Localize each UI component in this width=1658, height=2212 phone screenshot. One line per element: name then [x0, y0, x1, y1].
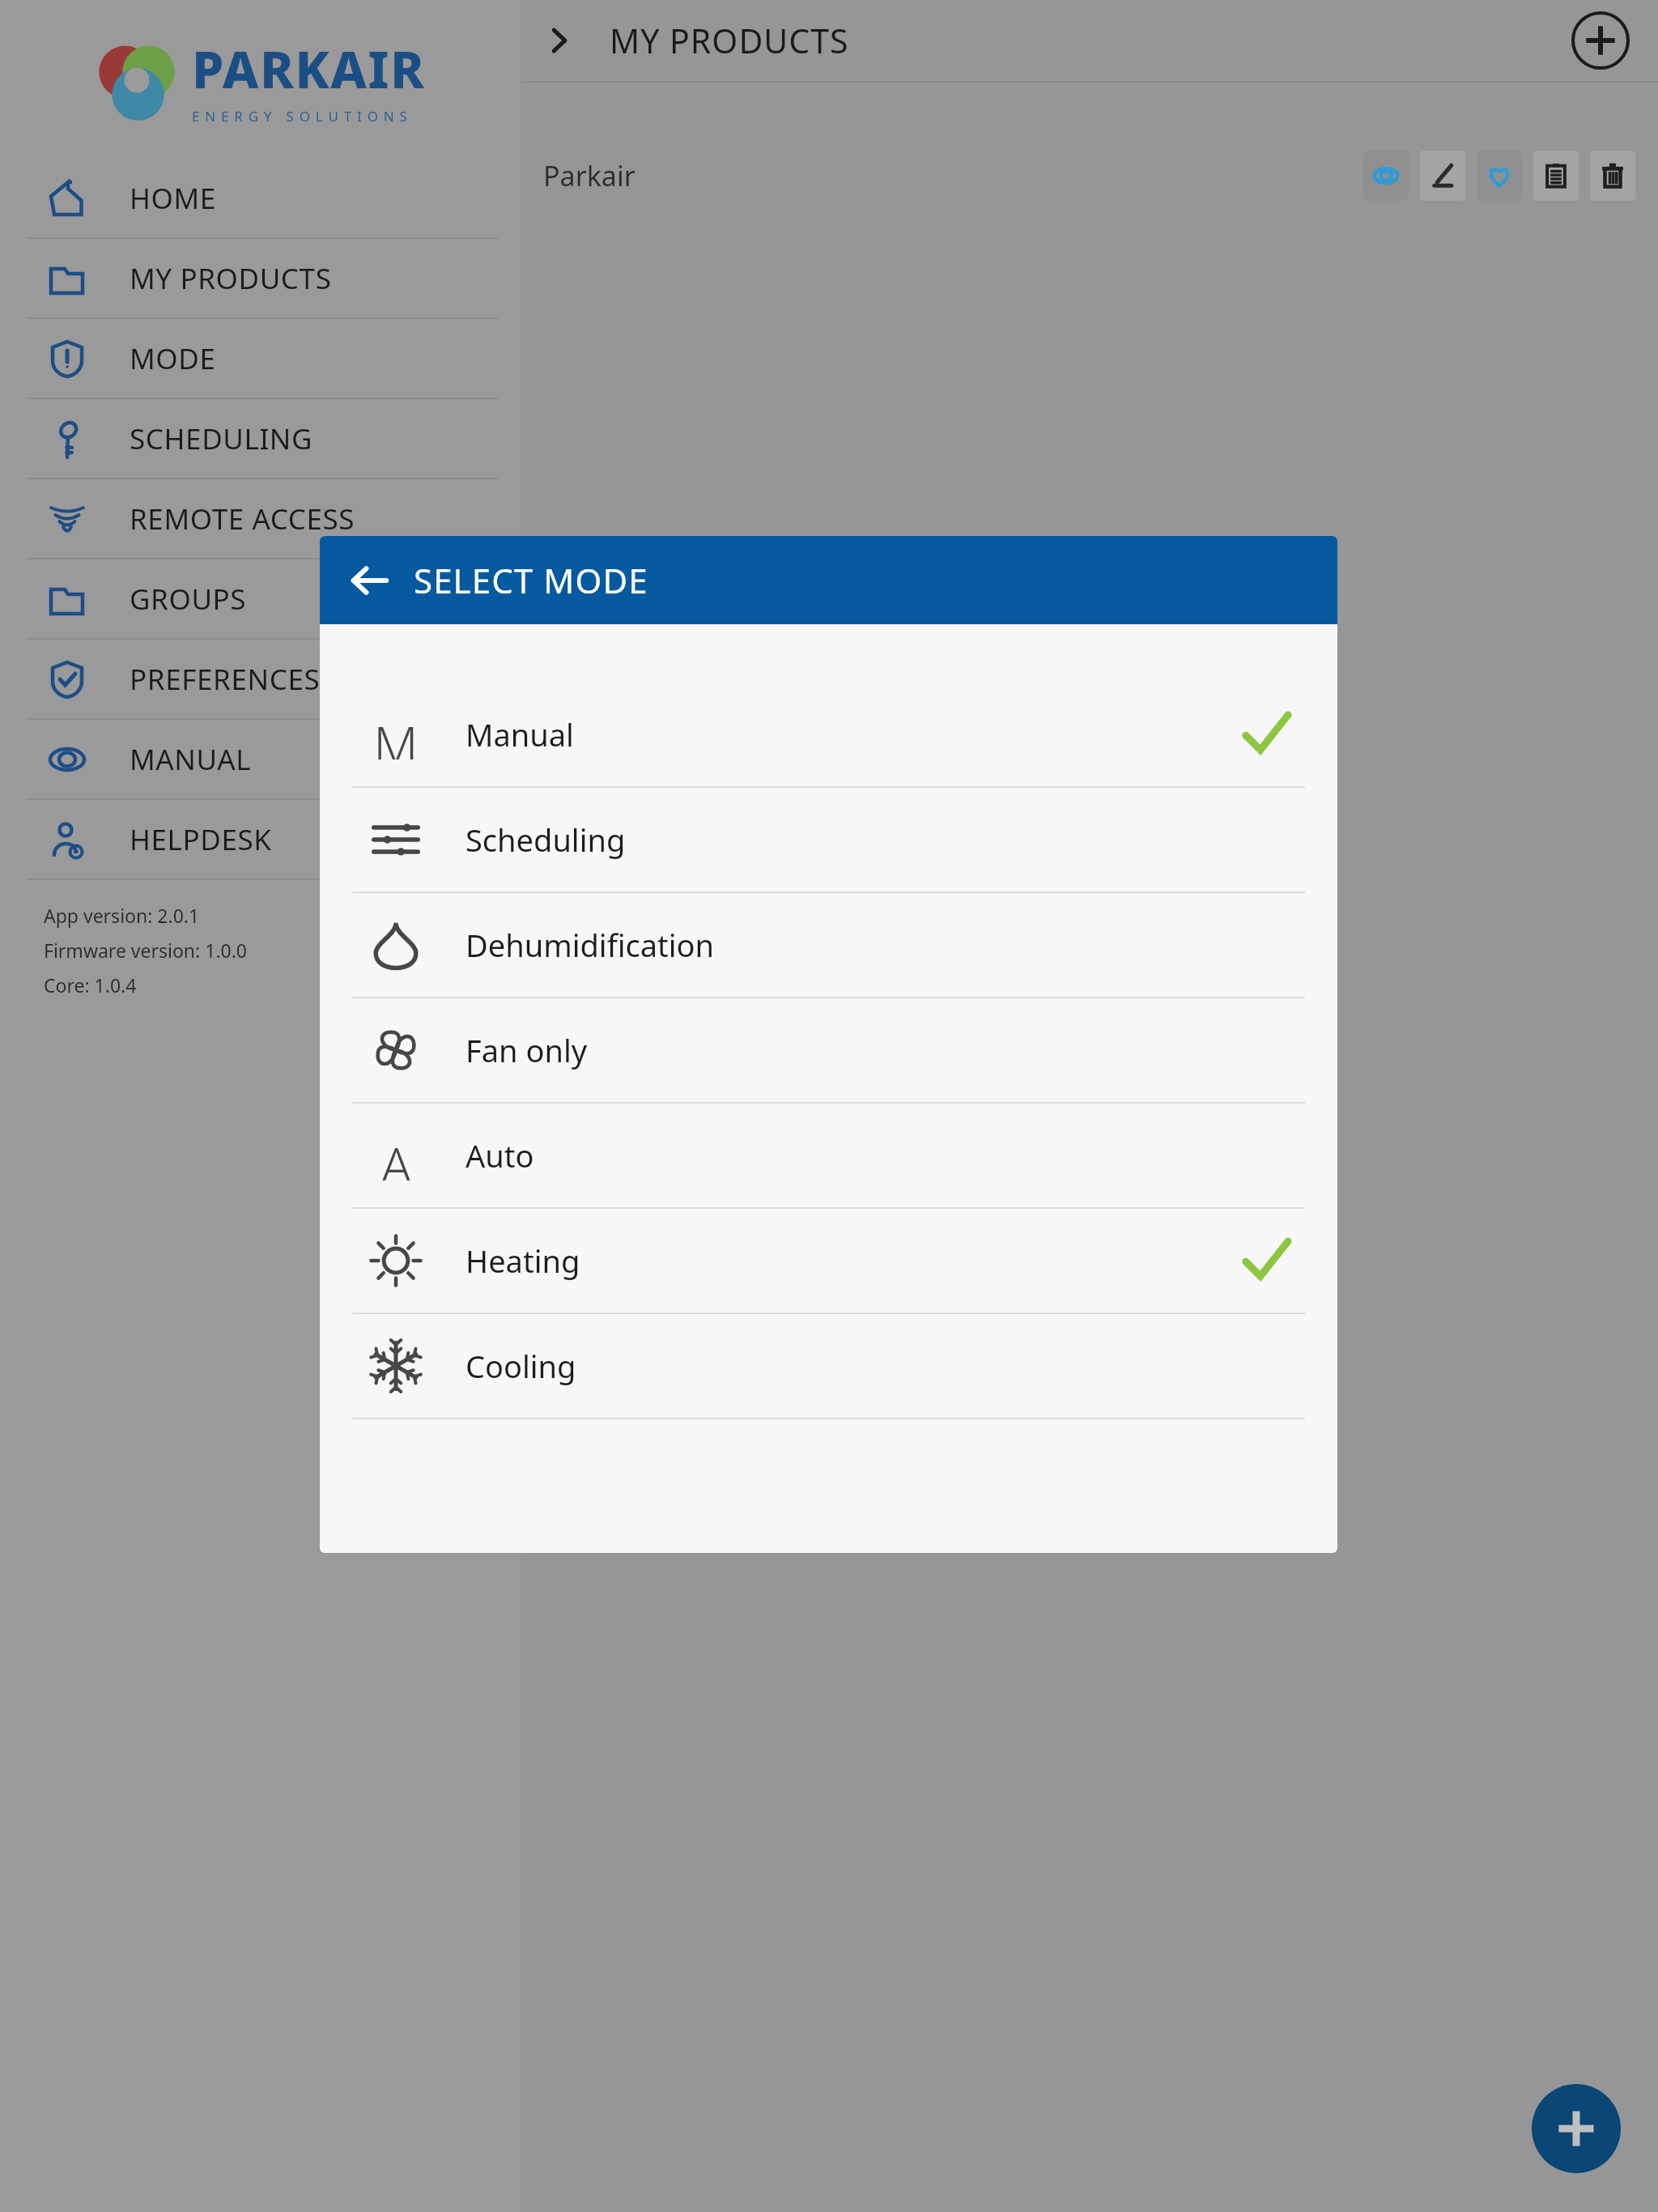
staticText: Heating: [466, 1240, 580, 1282]
button[interactable]: Fan only: [320, 998, 1337, 1104]
staticText: Manual: [466, 713, 574, 755]
button[interactable]: Add: [1532, 2084, 1621, 2173]
button[interactable]: Delete: [1590, 151, 1635, 201]
button[interactable]: Cooling: [320, 1314, 1337, 1419]
staticText: M: [373, 709, 419, 759]
staticText: Scheduling: [466, 819, 626, 861]
staticText: Auto: [466, 1134, 534, 1176]
button[interactable]: SCHEDULING: [0, 399, 521, 478]
button[interactable]: Heating: [320, 1209, 1337, 1314]
button[interactable]: A: [320, 1104, 1337, 1209]
staticText: App version: 2.0.1: [44, 903, 200, 928]
button[interactable]: HELPDESK: [0, 800, 521, 878]
button[interactable]: HOME: [0, 159, 521, 237]
staticText: Fan only: [466, 1029, 588, 1071]
staticText: GROUPS: [130, 580, 247, 619]
button[interactable]: Dehumidification: [320, 893, 1337, 998]
staticText: Parkair: [543, 157, 636, 194]
staticText: A: [380, 1130, 412, 1180]
button[interactable]: REMOTE ACCESS: [0, 479, 521, 558]
button[interactable]: Favourite: [1477, 151, 1522, 201]
staticText: REMOTE ACCESS: [130, 500, 355, 538]
staticText: MANUAL: [130, 740, 252, 779]
button[interactable]: Open navigation: [521, 2, 598, 79]
staticText: Dehumidification: [466, 924, 715, 966]
button[interactable]: Add product: [1556, 0, 1645, 81]
button[interactable]: M: [320, 683, 1337, 788]
staticText: HELPDESK: [130, 820, 272, 859]
button[interactable]: GROUPS: [0, 559, 521, 638]
staticText: HOME: [130, 179, 216, 218]
staticText: Core: 1.0.4: [44, 972, 137, 998]
staticText: MY PRODUCTS: [130, 259, 332, 298]
staticText: MODE: [130, 339, 216, 378]
button[interactable]: MODE: [0, 319, 521, 398]
button[interactable]: View: [1363, 151, 1409, 201]
staticText: Cooling: [466, 1345, 576, 1387]
button[interactable]: Edit: [1420, 151, 1465, 201]
button[interactable]: Back: [338, 548, 402, 613]
button[interactable]: MY PRODUCTS: [0, 239, 521, 317]
button[interactable]: Report: [1533, 151, 1579, 201]
button[interactable]: MANUAL: [0, 720, 521, 798]
staticText: E N E R G Y S O L U T I O N S: [192, 107, 409, 125]
staticText: Firmware version: 1.0.0: [44, 938, 248, 963]
staticText: MY PRODUCTS: [610, 18, 849, 63]
staticText: PREFERENCES: [130, 660, 321, 699]
staticText: PARKAIR: [192, 34, 426, 104]
button[interactable]: Scheduling: [320, 788, 1337, 893]
button[interactable]: PREFERENCES: [0, 640, 521, 718]
staticText: SCHEDULING: [130, 419, 313, 458]
staticText: SELECT MODE: [414, 557, 648, 603]
